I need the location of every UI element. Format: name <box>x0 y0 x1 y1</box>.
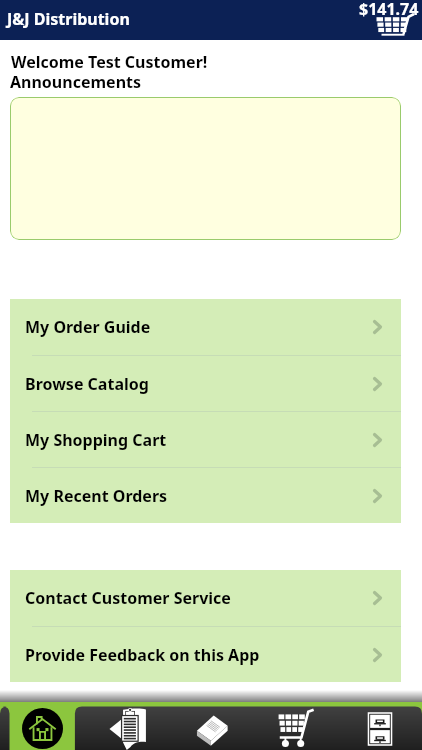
staticText: $141.74 <box>359 0 419 20</box>
button[interactable]: Order Guide <box>85 702 170 750</box>
button[interactable]: Provide Feedback on this App <box>10 627 401 682</box>
button[interactable]: Contact Customer Service <box>10 570 401 626</box>
staticText: Welcome Test Customer! <box>11 51 208 73</box>
button[interactable]: Shopping cart total <box>347 0 422 40</box>
button[interactable]: Home <box>0 702 85 750</box>
staticText: Provide Feedback on this App <box>25 644 260 666</box>
button[interactable]: My Recent Orders <box>10 468 401 523</box>
button[interactable]: Catalog <box>170 702 254 750</box>
button[interactable]: My Order Guide <box>10 299 401 355</box>
staticText: J&J Distribution <box>7 8 130 30</box>
staticText: My Order Guide <box>25 316 151 338</box>
button[interactable]: Browse Catalog <box>10 356 401 411</box>
button[interactable]: Shopping Cart <box>254 702 338 750</box>
staticText: Contact Customer Service <box>25 587 231 609</box>
staticText: Browse Catalog <box>25 373 149 395</box>
staticText: Announcements <box>10 71 142 93</box>
staticText: My Shopping Cart <box>25 429 167 451</box>
button[interactable]: My Shopping Cart <box>10 412 401 467</box>
button[interactable]: Account <box>338 702 422 750</box>
staticText: My Recent Orders <box>25 485 168 507</box>
